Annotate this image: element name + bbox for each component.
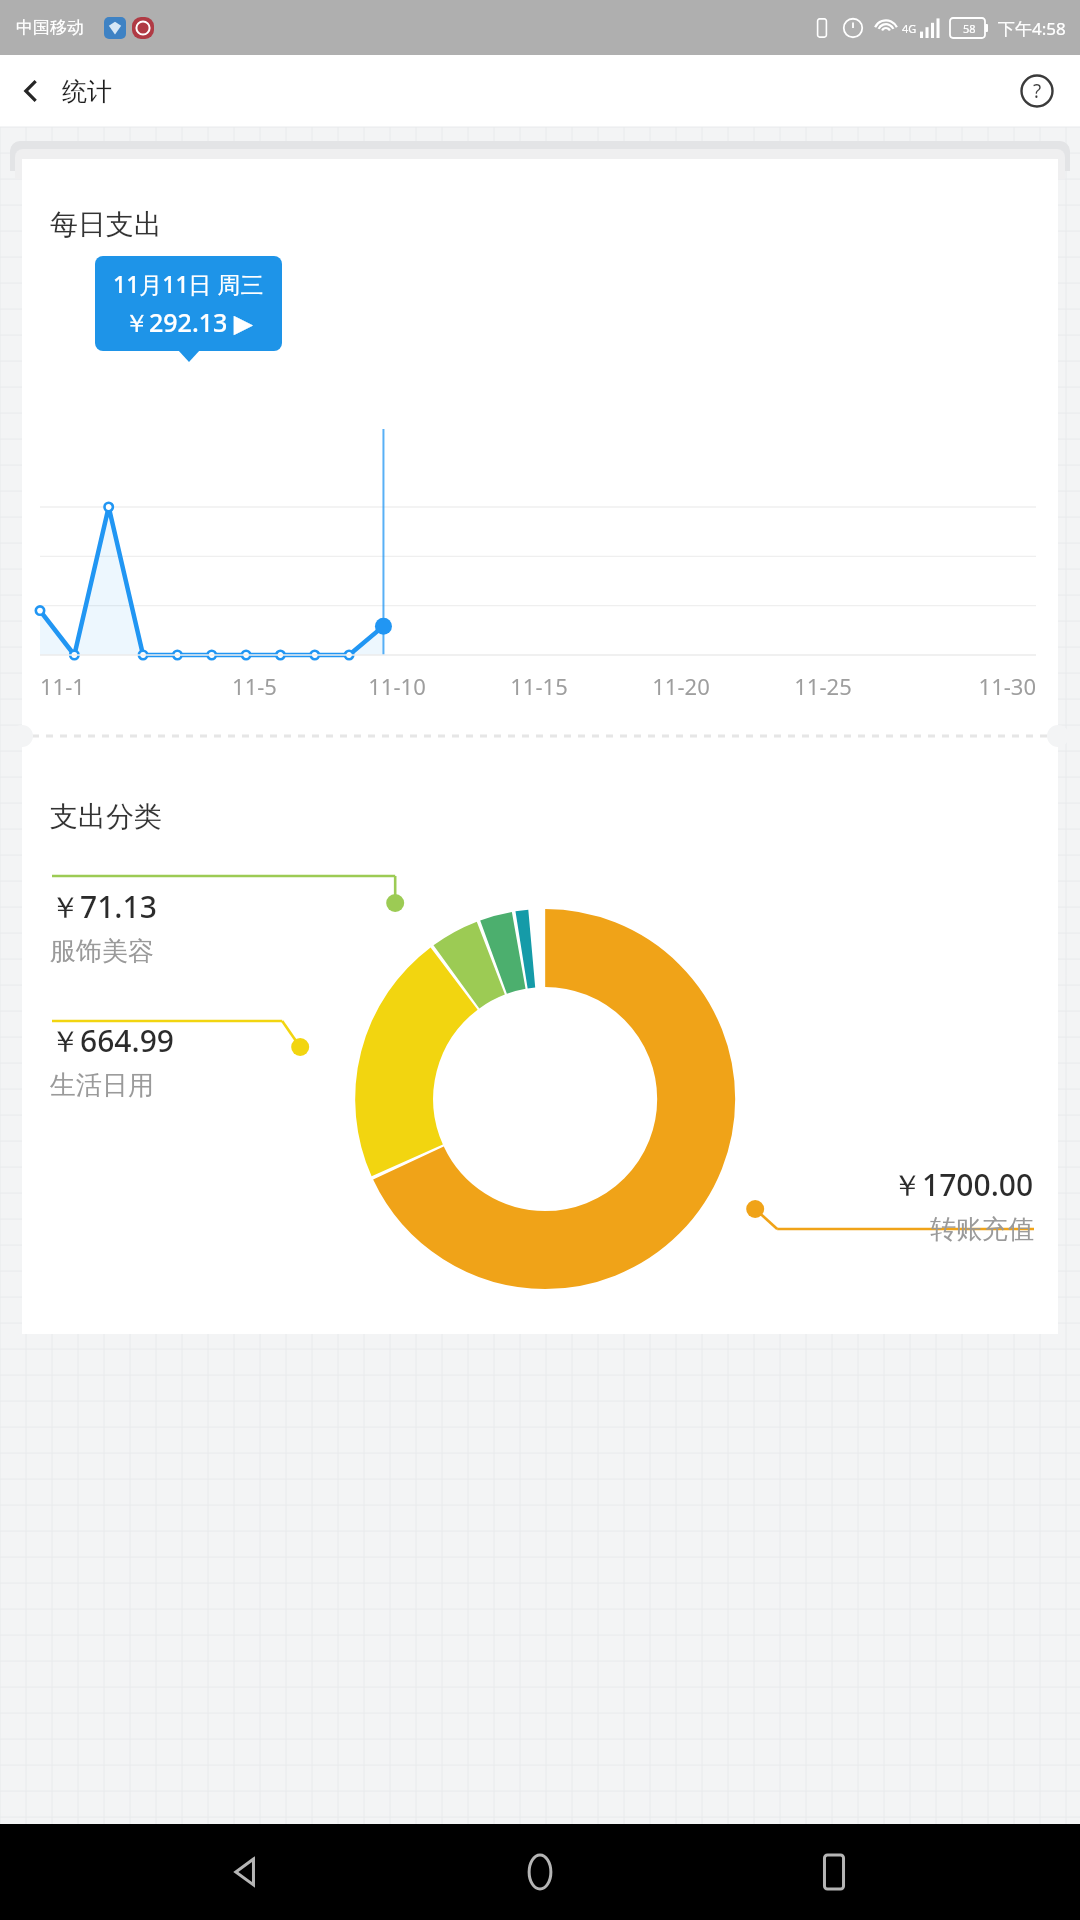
staticText: 11-30 bbox=[894, 671, 1036, 701]
staticText: 4G bbox=[902, 21, 917, 36]
staticText: 每日支出 bbox=[50, 207, 162, 242]
button[interactable]: 11月11日 周三 bbox=[95, 256, 282, 351]
staticText: ? bbox=[1033, 78, 1042, 104]
staticText: 11-10 bbox=[326, 671, 468, 701]
button[interactable]: Recents bbox=[786, 1824, 882, 1920]
staticText: 服饰美容 bbox=[50, 935, 154, 968]
staticText: 中国移动 bbox=[16, 17, 84, 38]
staticText: 58 bbox=[963, 21, 976, 36]
button[interactable]: Help bbox=[1006, 60, 1068, 122]
staticText: 11-5 bbox=[183, 671, 326, 701]
staticText: ￥292.13 ▶ bbox=[124, 305, 254, 339]
staticText: 生活日用 bbox=[50, 1069, 154, 1102]
staticText: 11月11日 周三 bbox=[113, 268, 264, 299]
staticText: 11-20 bbox=[610, 671, 752, 701]
staticText: 转账充值 bbox=[930, 1213, 1034, 1246]
staticText: 下午4:58 bbox=[998, 17, 1066, 40]
button[interactable]: Back bbox=[0, 60, 62, 122]
staticText: 支出分类 bbox=[50, 799, 162, 834]
button[interactable]: Home bbox=[492, 1824, 588, 1920]
staticText: ￥71.13 bbox=[50, 886, 157, 927]
staticText: 11-1 bbox=[40, 671, 183, 701]
staticText: ￥1700.00 bbox=[892, 1164, 1034, 1205]
staticText: 11-25 bbox=[752, 671, 894, 701]
staticText: ￥664.99 bbox=[50, 1020, 174, 1061]
staticText: 11-15 bbox=[468, 671, 610, 701]
staticText: 统计 bbox=[62, 76, 112, 107]
button[interactable]: Back bbox=[198, 1824, 294, 1920]
